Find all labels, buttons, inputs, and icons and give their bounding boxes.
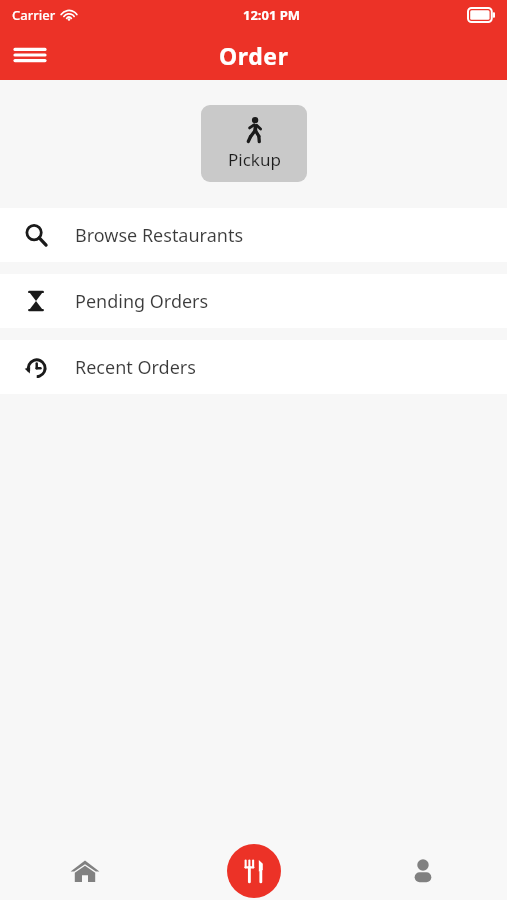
button[interactable]: Profile bbox=[338, 841, 507, 900]
staticText: Pickup bbox=[228, 148, 281, 171]
staticText: Pending Orders bbox=[75, 289, 209, 314]
staticText: Carrier bbox=[12, 6, 56, 24]
button[interactable]: Pickup bbox=[201, 105, 307, 182]
button[interactable]: Browse Restaurants bbox=[0, 208, 507, 262]
button[interactable]: Recent Orders bbox=[0, 340, 507, 394]
staticText: Order bbox=[219, 40, 289, 71]
button[interactable]: Pending Orders bbox=[0, 274, 507, 328]
button[interactable]: Menu bbox=[8, 33, 52, 77]
staticText: Browse Restaurants bbox=[75, 223, 244, 248]
staticText: 12:01 PM bbox=[243, 6, 301, 24]
button[interactable]: Order bbox=[169, 841, 338, 900]
button[interactable]: Home bbox=[0, 841, 169, 900]
staticText: Recent Orders bbox=[75, 355, 196, 380]
